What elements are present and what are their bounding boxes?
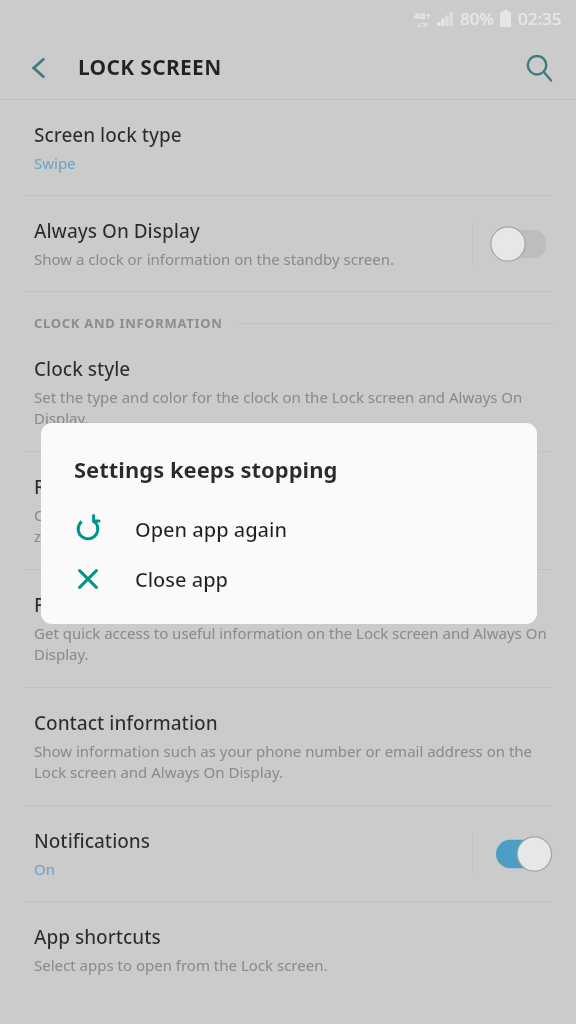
staticText: Roaming clock [34,474,167,500]
staticText: LTE [418,21,428,29]
button[interactable]: Always On Display off [494,222,558,266]
staticText: Contact information [34,710,218,736]
button[interactable]: Roaming clock [0,452,576,569]
staticText: Change the clock on the Lock screen to s… [34,505,558,547]
button[interactable]: Search [514,43,564,93]
button[interactable]: Always On Display [0,196,576,291]
button[interactable]: Screen lock type [0,100,576,195]
button[interactable]: Notifications [0,806,576,901]
button[interactable]: Clock style [0,342,576,451]
staticText: CLOCK AND INFORMATION [34,314,223,332]
staticText: 4G+ [414,9,431,21]
button[interactable]: Notifications on [494,832,558,876]
staticText: Set the type and color for the clock on … [34,387,558,429]
staticText: 80% [460,7,494,30]
staticText: Notifications [34,828,151,854]
button[interactable]: Contact information [0,688,576,805]
staticText: LOCK SCREEN [78,53,222,82]
staticText: Clock style [34,356,131,382]
staticText: Open app again [135,516,287,543]
staticText: Show information such as your phone numb… [34,741,558,783]
staticText: Settings keeps stopping [74,454,338,484]
button[interactable]: Back [14,43,64,93]
button[interactable]: Close app [41,554,537,604]
staticText: Swipe [34,153,76,173]
staticText: App shortcuts [34,924,161,950]
staticText: On [34,859,55,879]
staticText: Show a clock or information on the stand… [34,249,395,269]
staticText: 02:35 [518,7,562,30]
staticText: FaceWidgets [34,592,150,618]
button[interactable]: Open app again [41,504,537,554]
staticText: Always On Display [34,218,200,244]
button[interactable]: App shortcuts [0,902,576,997]
button[interactable]: FaceWidgets [0,570,576,687]
staticText: Screen lock type [34,122,182,148]
staticText: Select apps to open from the Lock screen… [34,955,328,975]
staticText: Get quick access to useful information o… [34,623,558,665]
staticText: Close app [135,566,228,593]
